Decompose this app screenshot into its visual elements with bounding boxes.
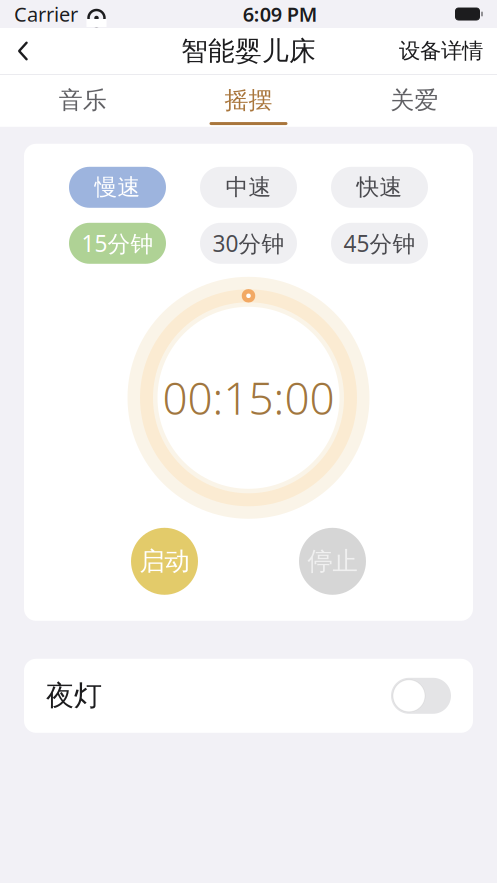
button[interactable]: 摇摆 bbox=[166, 75, 331, 127]
button[interactable]: 返回 bbox=[0, 29, 46, 73]
button[interactable]: 设备详情 bbox=[385, 29, 497, 73]
staticText: 15分钟 bbox=[81, 228, 153, 258]
staticText: 快速 bbox=[356, 173, 402, 201]
button[interactable]: 45分钟 bbox=[331, 223, 428, 264]
button[interactable]: 停止 bbox=[299, 528, 366, 595]
staticText: 智能婴儿床 bbox=[181, 35, 316, 67]
button[interactable]: 中速 bbox=[200, 167, 297, 208]
button[interactable]: 15分钟 bbox=[69, 223, 166, 264]
staticText: 启动 bbox=[139, 546, 189, 577]
staticText: 6:09 PM bbox=[243, 1, 318, 27]
staticText: 设备详情 bbox=[399, 38, 483, 64]
staticText: 音乐 bbox=[59, 86, 107, 115]
staticText: 45分钟 bbox=[343, 228, 415, 258]
staticText: 摇摆 bbox=[224, 86, 272, 115]
staticText: 中速 bbox=[225, 173, 271, 201]
staticText: 停止 bbox=[307, 546, 357, 577]
button[interactable]: 音乐 bbox=[0, 75, 166, 127]
button[interactable]: 慢速 bbox=[69, 167, 166, 208]
staticText: 慢速 bbox=[94, 173, 140, 201]
button[interactable]: 关爱 bbox=[331, 75, 497, 127]
button[interactable]: 夜灯 bbox=[24, 659, 473, 733]
staticText: 关爱 bbox=[390, 86, 438, 115]
staticText: Carrier bbox=[14, 1, 78, 27]
staticText: 夜灯 bbox=[46, 679, 102, 713]
button[interactable]: 30分钟 bbox=[200, 223, 297, 264]
button[interactable]: 启动 bbox=[131, 528, 198, 595]
button[interactable]: 快速 bbox=[331, 167, 428, 208]
staticText: 30分钟 bbox=[212, 228, 284, 258]
staticText: 00:15:00 bbox=[162, 369, 334, 427]
